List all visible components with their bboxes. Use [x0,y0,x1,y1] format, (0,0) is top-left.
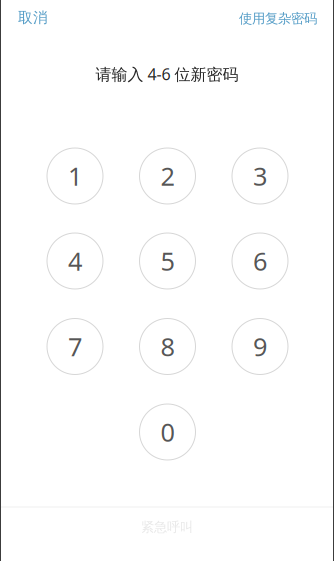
button[interactable]: 取消 [12,3,54,31]
staticText: 7 [68,330,82,363]
button[interactable]: 9 [232,318,288,374]
staticText: 6 [253,244,267,278]
staticText: 1 [68,159,82,193]
button[interactable]: 3 [232,148,288,204]
staticText: 8 [160,330,174,363]
staticText: 3 [253,159,267,193]
button[interactable]: 2 [139,148,195,204]
button[interactable]: 紧急呼叫 [133,513,201,541]
staticText: 0 [160,415,174,449]
staticText: 4 [68,244,82,278]
staticText: 9 [253,330,267,363]
staticText: 5 [160,244,174,278]
button[interactable]: 7 [47,318,103,374]
button[interactable]: 4 [47,233,103,289]
button[interactable]: 1 [47,148,103,204]
button[interactable]: 5 [139,233,195,289]
button[interactable]: 0 [139,404,195,460]
button[interactable]: 6 [232,233,288,289]
staticText: 紧急呼叫 [141,519,193,535]
staticText: 取消 [18,8,48,26]
button[interactable]: 使用复杂密码 [233,5,323,32]
staticText: 请输入 4-6 位新密码 [95,63,238,85]
button[interactable]: 8 [139,318,195,374]
staticText: 使用复杂密码 [239,10,317,27]
staticText: 2 [160,159,174,193]
